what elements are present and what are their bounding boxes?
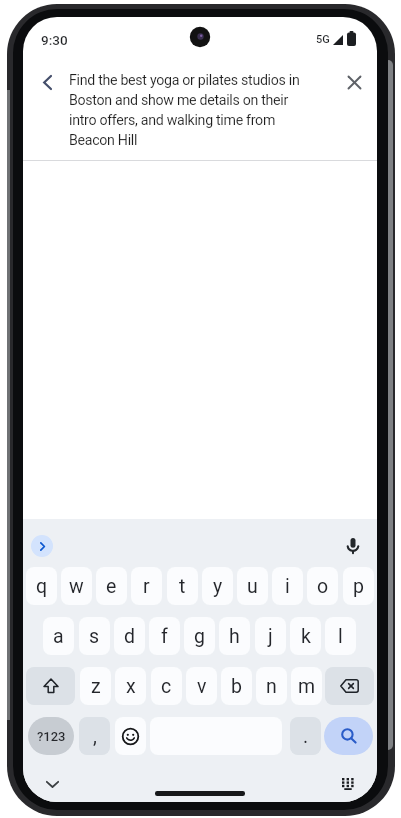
staticText: 5G: [316, 33, 330, 46]
button[interactable]: o: [307, 567, 338, 605]
staticText: c: [161, 675, 172, 698]
staticText: a: [53, 625, 64, 648]
button[interactable]: t: [167, 567, 198, 605]
button[interactable]: [325, 667, 374, 705]
staticText: o: [317, 575, 329, 598]
button[interactable]: [30, 65, 64, 99]
button[interactable]: m: [291, 667, 322, 705]
button[interactable]: [115, 717, 146, 755]
staticText: g: [194, 625, 205, 648]
staticText: w: [69, 575, 84, 598]
staticText: y: [213, 575, 223, 598]
staticText: b: [231, 675, 242, 698]
staticText: l: [338, 625, 343, 648]
button[interactable]: ,: [79, 717, 110, 755]
button[interactable]: x: [115, 667, 146, 705]
button[interactable]: [341, 534, 365, 558]
staticText: h: [229, 625, 240, 648]
button[interactable]: r: [131, 567, 162, 605]
staticText: z: [91, 675, 101, 698]
button[interactable]: [41, 775, 63, 793]
staticText: t: [179, 575, 186, 598]
staticText: d: [124, 625, 135, 648]
button[interactable]: [26, 667, 75, 705]
button[interactable]: u: [237, 567, 268, 605]
staticText: .: [303, 725, 309, 748]
button[interactable]: s: [79, 617, 110, 655]
button[interactable]: d: [114, 617, 145, 655]
staticText: Find the best yoga or pilates studios in…: [69, 72, 300, 149]
button[interactable]: a: [43, 617, 74, 655]
button[interactable]: e: [96, 567, 127, 605]
staticText: ,: [93, 725, 97, 748]
button[interactable]: q: [26, 567, 57, 605]
button[interactable]: g: [184, 617, 215, 655]
staticText: x: [126, 675, 136, 698]
staticText: m: [298, 675, 316, 698]
button[interactable]: j: [255, 617, 286, 655]
staticText: v: [197, 675, 207, 698]
button[interactable]: i: [272, 567, 303, 605]
button[interactable]: z: [80, 667, 111, 705]
staticText: r: [143, 575, 150, 598]
staticText: s: [89, 625, 100, 648]
staticText: j: [268, 625, 273, 648]
button[interactable]: ?123: [28, 717, 74, 755]
staticText: n: [266, 675, 277, 698]
button[interactable]: b: [221, 667, 252, 705]
staticText: p: [353, 575, 364, 598]
staticText: 9:30: [41, 32, 68, 48]
button[interactable]: k: [290, 617, 321, 655]
staticText: ?123: [37, 729, 66, 744]
button[interactable]: v: [186, 667, 217, 705]
staticText: q: [36, 575, 48, 598]
button[interactable]: w: [61, 567, 92, 605]
button[interactable]: c: [151, 667, 182, 705]
button[interactable]: l: [325, 617, 356, 655]
button[interactable]: n: [256, 667, 287, 705]
staticText: u: [247, 575, 258, 598]
button[interactable]: h: [219, 617, 250, 655]
staticText: f: [161, 625, 168, 648]
button[interactable]: [324, 717, 373, 755]
button[interactable]: y: [202, 567, 233, 605]
button[interactable]: .: [290, 717, 321, 755]
button[interactable]: [31, 535, 53, 557]
button[interactable]: p: [343, 567, 374, 605]
staticText: i: [285, 575, 290, 598]
button[interactable]: [337, 65, 371, 99]
button[interactable]: [337, 775, 359, 793]
button[interactable]: f: [149, 617, 180, 655]
staticText: e: [106, 575, 117, 598]
staticText: k: [301, 625, 311, 648]
